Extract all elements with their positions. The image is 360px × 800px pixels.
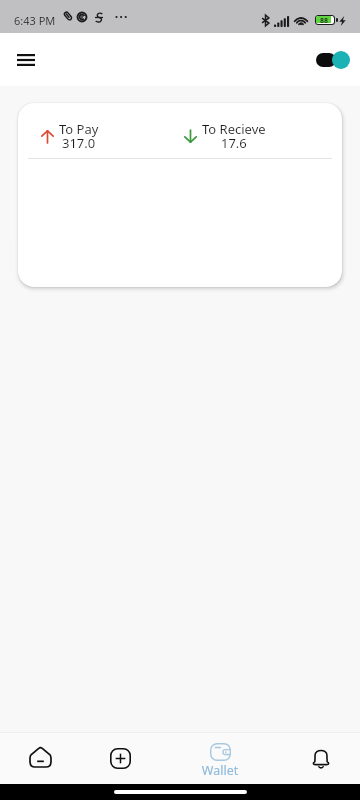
staticText: 6:43 PM (14, 13, 56, 28)
button[interactable]: Toggle dark mode (312, 45, 352, 75)
button[interactable]: Home (0, 732, 80, 784)
button[interactable]: Menu (11, 45, 41, 75)
staticText: 88 (320, 16, 329, 24)
staticText: To Recieve (202, 120, 266, 138)
staticText: Wallet (198, 762, 242, 779)
button[interactable]: Wallet (175, 732, 265, 784)
staticText: 17.6 (221, 134, 247, 152)
button[interactable]: To Pay (18, 103, 342, 287)
staticText: 317.0 (62, 134, 96, 152)
staticText: To Pay (59, 120, 99, 138)
button[interactable]: Add (80, 732, 170, 784)
button[interactable]: Notifications (275, 732, 360, 784)
